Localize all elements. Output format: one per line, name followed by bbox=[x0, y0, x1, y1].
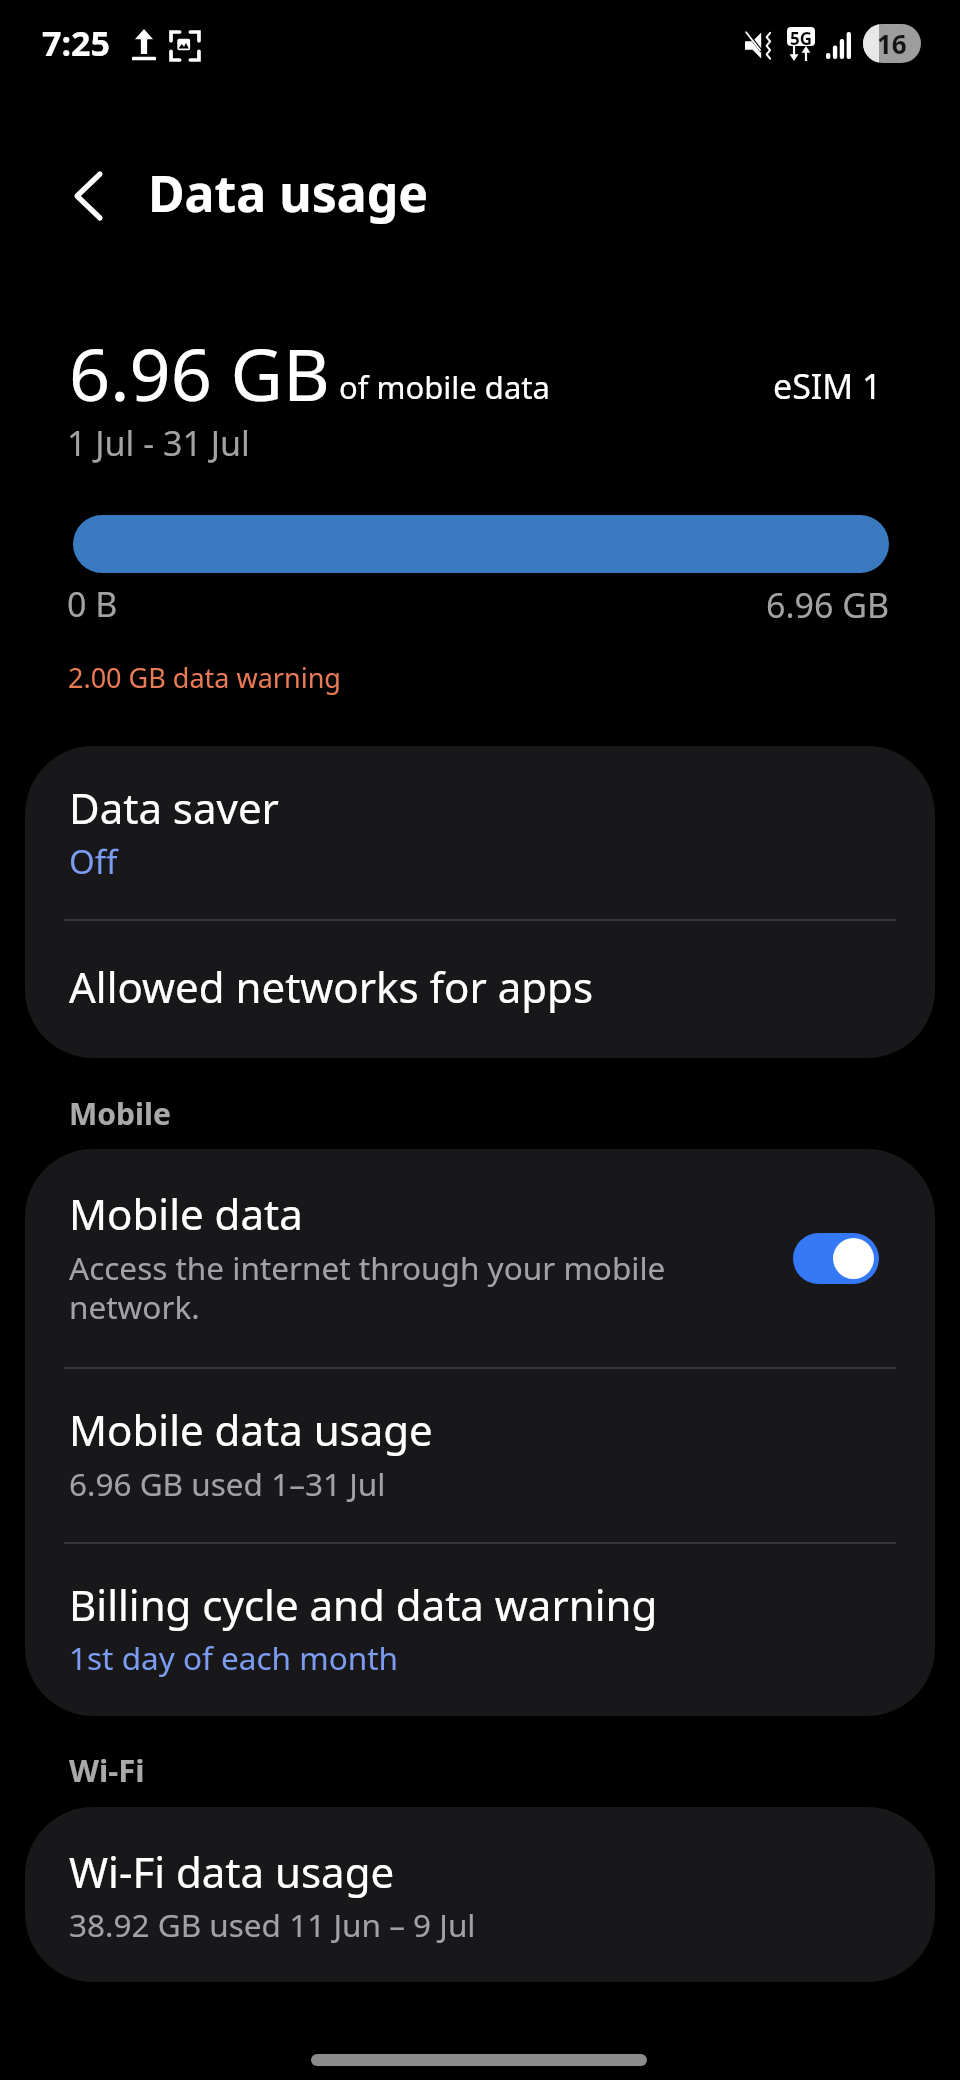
button[interactable]: Navigate up bbox=[44, 152, 132, 240]
staticText: 0 B bbox=[67, 581, 118, 627]
staticText: 1st day of each month bbox=[69, 1636, 399, 1679]
staticText: Billing cycle and data warning bbox=[69, 1576, 658, 1633]
other: Uploading bbox=[132, 29, 156, 61]
button[interactable]: Billing cycle and data warning bbox=[25, 1544, 935, 1716]
staticText: of mobile data bbox=[339, 366, 550, 408]
staticText: Mobile bbox=[69, 1093, 171, 1134]
button[interactable]: Mobile data usage bbox=[25, 1369, 935, 1544]
button[interactable]: Wi-Fi data usage bbox=[25, 1807, 935, 1982]
button[interactable]: Mobile data bbox=[25, 1149, 935, 1367]
staticText: Data usage bbox=[148, 159, 429, 227]
staticText: Data saver bbox=[69, 779, 279, 836]
staticText: 1 Jul - 31 Jul bbox=[67, 420, 250, 466]
staticText: 7:25 bbox=[42, 20, 110, 66]
staticText: 2.00 GB data warning bbox=[68, 659, 341, 696]
staticText: 38.92 GB used 11 Jun – 9 Jul bbox=[69, 1903, 476, 1946]
staticText: 6.96 GB used 1–31 Jul bbox=[69, 1462, 386, 1505]
staticText: Mobile data bbox=[69, 1185, 303, 1242]
staticText: 6.96 GB bbox=[766, 582, 890, 628]
other: Sound off bbox=[745, 32, 772, 59]
button[interactable]: Data saver bbox=[25, 746, 935, 919]
staticText: Mobile data usage bbox=[69, 1401, 433, 1458]
staticText: Off bbox=[69, 839, 118, 884]
staticText: Wi-Fi data usage bbox=[69, 1843, 395, 1900]
staticText: 5G bbox=[790, 27, 813, 46]
staticText: Access the internet through your mobile … bbox=[69, 1246, 689, 1329]
button[interactable]: Mobile data on bbox=[793, 1233, 879, 1284]
staticText: 16 bbox=[877, 26, 907, 61]
staticText: eSIM 1 bbox=[773, 363, 882, 409]
other: Signal strength bbox=[826, 32, 851, 59]
staticText: Allowed networks for apps bbox=[69, 958, 594, 1015]
staticText: 6.96 GB bbox=[69, 324, 330, 422]
other: Screenshot bbox=[169, 30, 201, 62]
other: Battery 16 percent bbox=[863, 24, 921, 63]
button[interactable]: Allowed networks for apps bbox=[25, 921, 935, 1058]
staticText: Wi-Fi bbox=[69, 1749, 145, 1791]
